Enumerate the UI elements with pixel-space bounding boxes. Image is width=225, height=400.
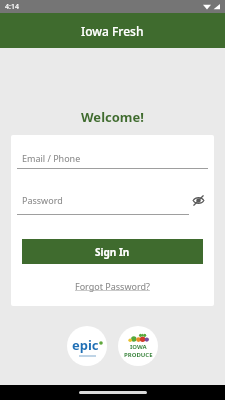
staticText: Welcome! [81, 108, 144, 126]
button[interactable]: Iowa Produce logo [118, 326, 158, 366]
staticText: Password [22, 194, 63, 206]
button[interactable]: Forgot Password? [69, 277, 156, 295]
staticText: IOWA [130, 343, 147, 351]
staticText: PRODUCE [124, 351, 153, 359]
button[interactable]: EPIC logo [67, 326, 107, 366]
staticText: epic [72, 336, 99, 354]
staticText: Iowa Fresh [81, 23, 144, 39]
staticText: Email / Phone [22, 152, 81, 164]
button[interactable]: Home [79, 391, 147, 394]
staticText: Forgot Password? [75, 280, 150, 292]
staticText: 4:14 [5, 2, 19, 12]
button[interactable]: Email / Phone [17, 152, 208, 169]
button[interactable]: Sign In [22, 239, 203, 264]
button[interactable]: Show password [188, 190, 208, 210]
staticText: Sign In [95, 245, 130, 259]
button[interactable]: Password [17, 190, 208, 215]
